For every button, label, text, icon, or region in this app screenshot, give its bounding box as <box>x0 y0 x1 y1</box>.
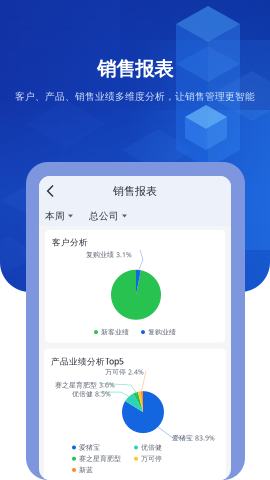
staticText: 优倍健 <box>141 443 162 452</box>
button[interactable]: 本周 <box>45 206 73 226</box>
staticText: 万可停 2.4% <box>105 367 144 376</box>
button[interactable]: 返回 <box>39 175 62 206</box>
staticText: 爱猪宝 83.9% <box>172 433 215 442</box>
staticText: 赛之星育肥型 3.6% <box>55 380 115 389</box>
staticText: 产品业绩分析Top5 <box>51 355 124 367</box>
staticText: 新蓝 <box>79 466 93 474</box>
staticText: 客户、产品、销售业绩多维度分析，让销售管理更智能 <box>15 90 255 103</box>
staticText: 爱猪宝 <box>79 443 100 452</box>
staticText: 销售报表 <box>113 184 157 198</box>
staticText: 复购业绩 <box>148 328 176 336</box>
staticText: 销售报表 <box>97 57 173 81</box>
staticText: 本周 <box>45 210 65 222</box>
staticText: 赛之星育肥型 <box>79 454 121 463</box>
staticText: 优倍健 8.5% <box>72 389 111 398</box>
staticText: 新客业绩 <box>101 328 129 336</box>
staticText: 客户分析 <box>52 237 88 248</box>
staticText: 万可停 <box>141 454 162 463</box>
button[interactable]: 总公司 <box>89 206 127 226</box>
staticText: 复购业绩 3.1% <box>86 250 132 259</box>
staticText: 总公司 <box>89 210 119 222</box>
